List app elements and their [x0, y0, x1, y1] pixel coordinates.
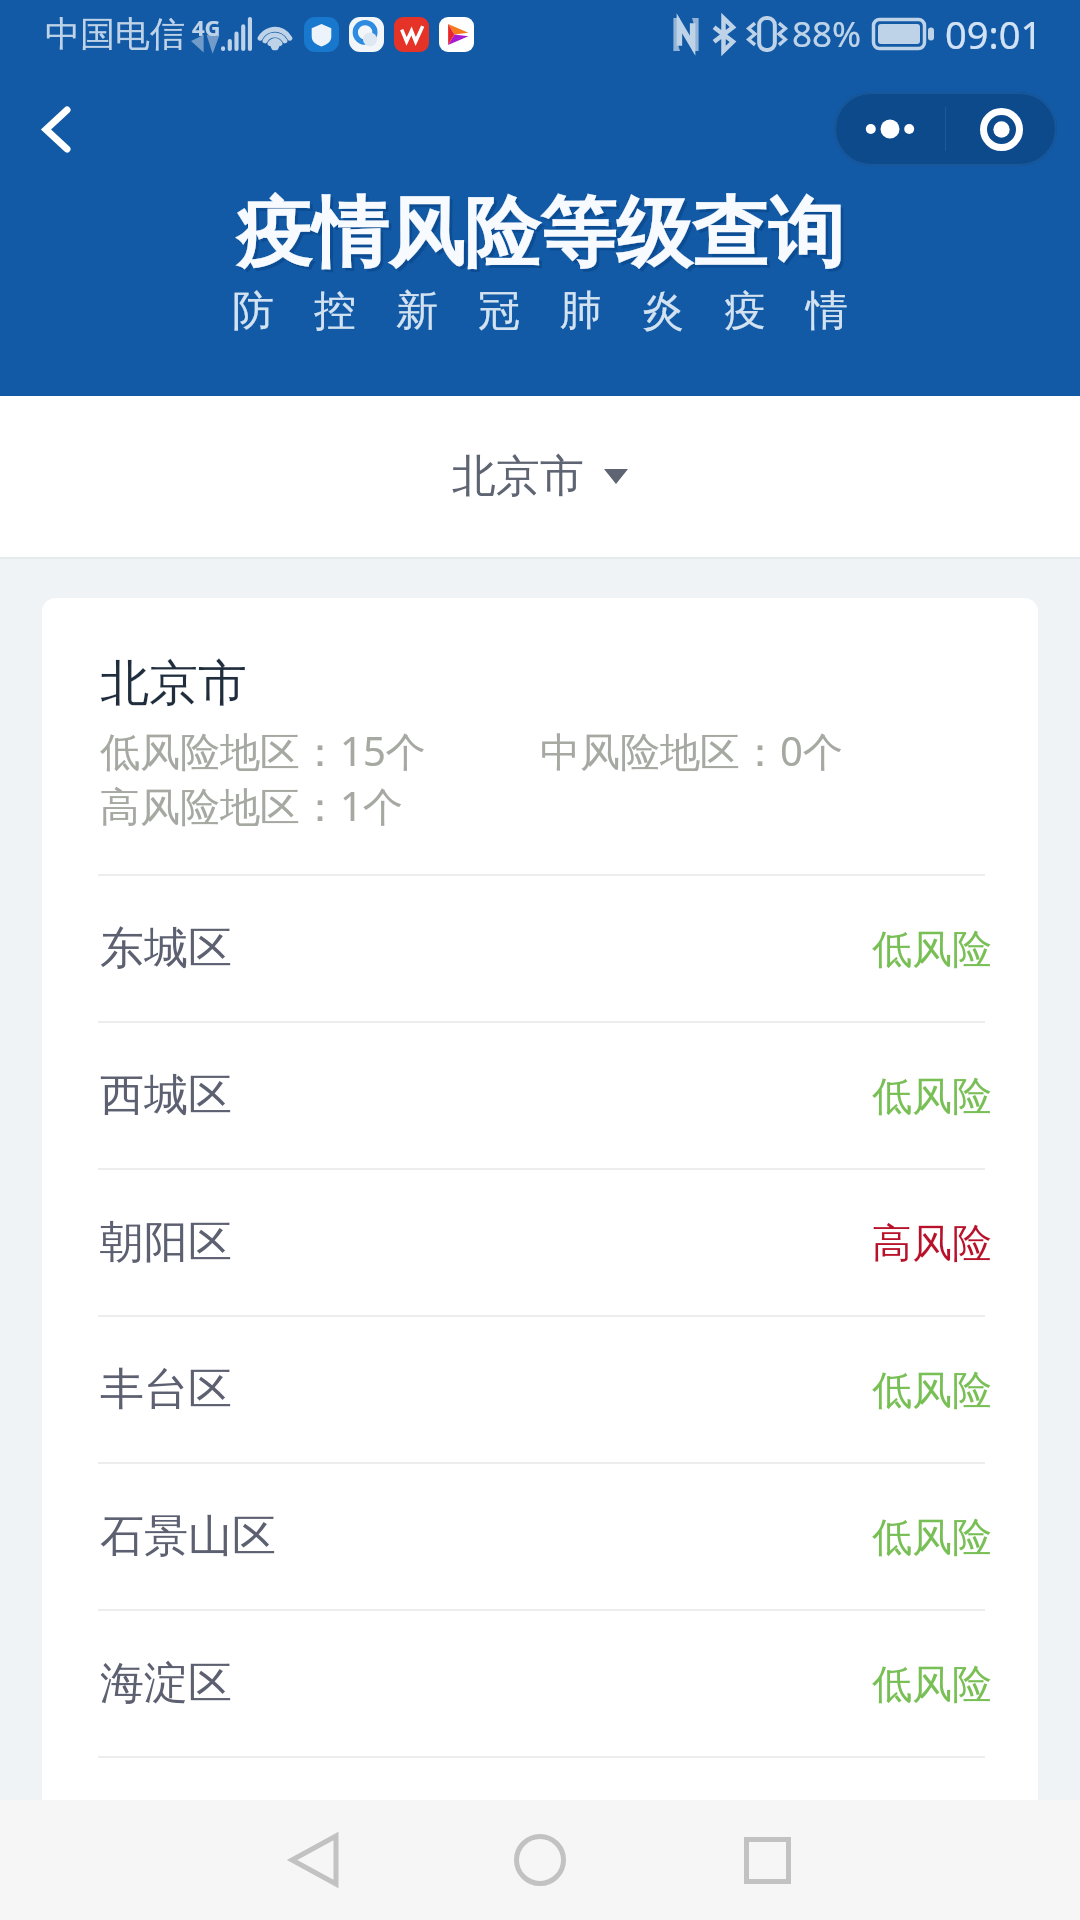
staticText: 疫情风险等级查询 — [239, 189, 847, 285]
staticText: 低风险 — [872, 924, 992, 974]
staticText: 北京市 — [452, 449, 584, 504]
staticText: 高风险地区：1个 — [100, 778, 403, 833]
staticText: 海淀区 — [100, 1656, 232, 1711]
button[interactable]: Close — [946, 108, 1057, 151]
button[interactable]: 西城区 — [42, 1023, 1038, 1168]
button[interactable]: 丰台区 — [42, 1317, 1038, 1462]
staticText: 中国电信 — [45, 12, 185, 56]
button[interactable]: 海淀区 — [42, 1611, 1038, 1756]
staticText: 石景山区 — [100, 1509, 276, 1564]
button[interactable]: 石景山区 — [42, 1464, 1038, 1609]
button[interactable]: 朝阳区 — [42, 1170, 1038, 1315]
staticText: 高风险 — [872, 1218, 992, 1268]
staticText: 低风险 — [872, 1365, 992, 1415]
staticText: 低风险 — [872, 1071, 992, 1121]
staticText: 防控新冠肺炎疫情 — [212, 285, 868, 338]
staticText: 北京市 — [100, 653, 247, 715]
staticText: 88% — [792, 10, 862, 58]
button[interactable]: Home — [495, 1815, 585, 1905]
button[interactable]: 东城区 — [42, 876, 1038, 1021]
button[interactable]: 北京市 — [0, 396, 1080, 557]
button[interactable]: Back — [268, 1815, 358, 1905]
staticText: 东城区 — [100, 921, 232, 976]
staticText: 4G — [192, 12, 221, 42]
staticText: 中风险地区：0个 — [540, 723, 843, 778]
staticText: 低风险 — [872, 1512, 992, 1562]
button[interactable]: More — [834, 119, 945, 139]
staticText: 疫情风险等级查询 — [236, 186, 844, 282]
staticText: 丰台区 — [100, 1362, 232, 1417]
staticText: 低风险 — [872, 1659, 992, 1709]
button[interactable]: Recent apps — [722, 1815, 812, 1905]
button[interactable]: Back — [14, 87, 98, 171]
staticText: 低风险地区：15个 — [100, 723, 540, 778]
staticText: 朝阳区 — [100, 1215, 232, 1270]
staticText: 西城区 — [100, 1068, 232, 1123]
staticText: 09:01 — [945, 8, 1043, 60]
